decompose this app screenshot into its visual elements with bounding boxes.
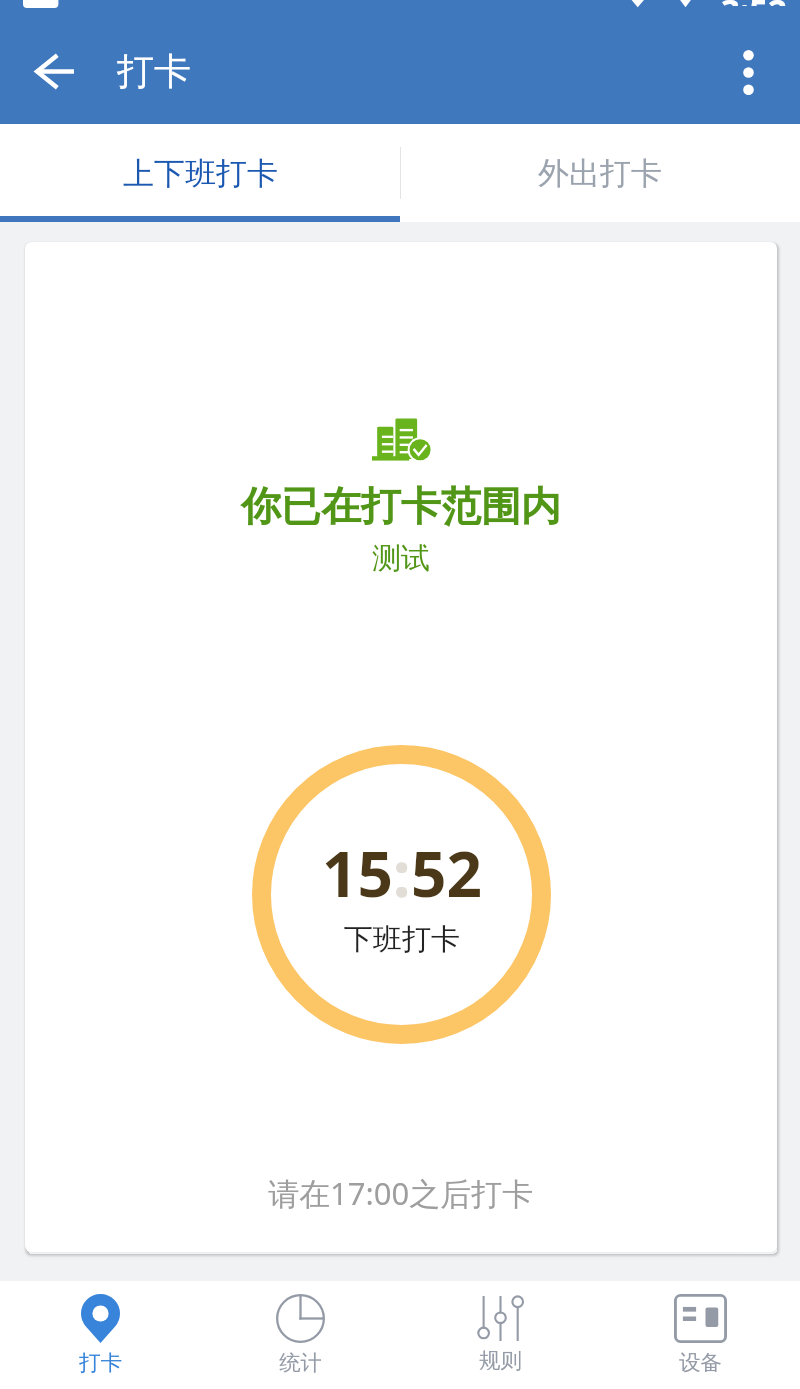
button[interactable]: 统计 <box>200 1281 400 1389</box>
staticText: 规则 <box>479 1347 522 1374</box>
staticText: 测试 <box>372 540 430 577</box>
button[interactable]: 15 <box>252 745 551 1044</box>
staticText: 下班打卡 <box>344 921 460 958</box>
staticText: 你已在打卡范围内 <box>241 481 561 531</box>
staticText: 外出打卡 <box>538 154 662 193</box>
staticText: : <box>393 831 411 915</box>
button[interactable]: 打卡 <box>0 1281 200 1389</box>
staticText: 52 <box>411 831 482 915</box>
button[interactable]: 上下班打卡 <box>0 124 400 222</box>
button[interactable]: More options <box>716 39 780 103</box>
staticText: 设备 <box>679 1349 722 1376</box>
staticText: 请在17:00之后打卡 <box>268 1172 534 1214</box>
staticText: 打卡 <box>79 1349 122 1376</box>
staticText: 统计 <box>279 1349 322 1376</box>
button[interactable]: 外出打卡 <box>400 124 800 222</box>
button[interactable]: Back <box>17 35 89 107</box>
staticText: 3:52 <box>721 0 787 6</box>
button[interactable]: 设备 <box>600 1281 800 1389</box>
button[interactable]: 规则 <box>400 1281 600 1389</box>
staticText: 15 <box>322 831 393 915</box>
staticText: 打卡 <box>117 48 191 95</box>
staticText: 上下班打卡 <box>123 154 278 193</box>
